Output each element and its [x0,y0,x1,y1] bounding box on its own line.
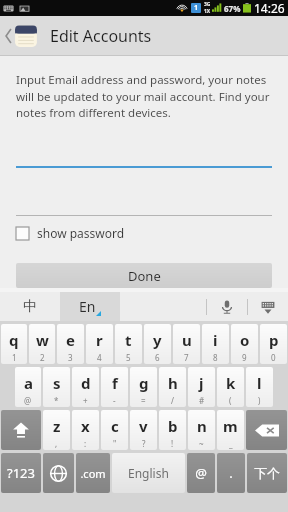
button[interactable]: x [72,410,99,450]
staticText: . [229,464,233,482]
button[interactable]: Change keyboard language [43,453,74,493]
button[interactable]: f [101,367,128,407]
staticText: ~ [199,438,204,449]
button[interactable]: Shift [1,410,41,450]
button[interactable]: . [217,453,245,493]
staticText: j [199,373,204,393]
staticText: f [112,373,118,393]
staticText: q [9,330,19,350]
staticText: : [84,438,87,449]
button[interactable] [16,194,272,216]
button[interactable]: Voice input [207,292,247,321]
staticText: 中 [23,298,37,316]
staticText: " [113,438,117,449]
staticText: 3G [204,1,211,8]
button[interactable]: Chinese input [0,292,60,321]
button[interactable]: g [130,367,157,407]
staticText: .com [80,466,106,481]
button[interactable]: Done [16,263,272,288]
staticText: Input Email address and password, your n… [16,72,272,120]
staticText: / [171,395,174,406]
button[interactable]: @ [187,453,215,493]
staticText: u [182,330,192,350]
staticText: l [257,373,262,393]
staticText: Edit Accounts [50,25,152,47]
staticText: n [197,416,207,436]
button[interactable]: h [159,367,186,407]
staticText: v [139,416,148,436]
staticText: 0 [271,352,276,363]
button[interactable]: c [101,410,128,450]
button[interactable]: .com [76,453,110,493]
button[interactable] [16,146,272,168]
button[interactable]: En [60,292,120,321]
staticText: g [139,373,149,393]
button[interactable]: v [130,410,157,450]
staticText: h [168,373,178,393]
button[interactable]: k [217,367,244,407]
button[interactable]: n [188,410,215,450]
staticText: 7 [184,352,189,363]
button[interactable]: u [173,324,200,364]
button[interactable]: show password [16,225,125,241]
staticText: m [223,416,238,436]
staticText: o [240,330,250,350]
button[interactable]: English [112,453,185,493]
staticText: i [213,330,218,350]
staticText: t [125,330,132,350]
staticText: 1 [194,3,199,13]
staticText: @ [24,395,32,406]
staticText: d [81,373,91,393]
staticText: c [111,416,119,436]
staticText: 67% [224,3,241,14]
staticText: ?123 [7,464,35,482]
staticText: y [153,330,162,350]
button[interactable]: Hide keyboard [248,292,288,321]
staticText: @ [195,464,207,482]
staticText: show password [37,225,125,241]
button[interactable]: q [1,324,27,364]
staticText: _ [229,438,233,449]
button[interactable]: r [86,324,113,364]
button[interactable]: z [43,410,70,450]
button[interactable]: d [72,367,99,407]
button[interactable]: ?123 [1,453,41,493]
button[interactable]: Backspace [246,410,287,450]
staticText: 2 [40,352,45,363]
button[interactable]: 下个 [247,453,287,493]
staticText: ? [142,438,146,449]
staticText: 5 [126,352,131,363]
staticText: ) [258,395,261,406]
staticText: 下个 [254,465,280,481]
staticText: 8 [213,352,218,363]
button[interactable]: e [57,324,84,364]
staticText: e [66,330,75,350]
staticText: 6 [155,352,160,363]
button[interactable]: o [231,324,258,364]
button[interactable]: i [202,324,229,364]
button[interactable]: m [217,410,244,450]
staticText: r [96,330,103,350]
staticText: 14:26 [254,0,285,16]
staticText: p [269,330,279,350]
staticText: English [128,465,169,481]
button[interactable]: y [144,324,171,364]
staticText: 1X [204,8,211,15]
button[interactable]: l [246,367,273,407]
button[interactable]: s [43,367,70,407]
button[interactable]: b [159,410,186,450]
staticText: w [36,330,49,350]
button[interactable]: t [115,324,142,364]
staticText: * [54,395,59,406]
button[interactable]: w [29,324,55,364]
staticText: 1 [12,352,17,363]
staticText: 3 [68,352,73,363]
button[interactable]: Navigate up [4,16,40,56]
button[interactable]: p [260,324,287,364]
staticText: x [81,416,90,436]
button[interactable]: a [15,367,41,407]
button[interactable]: j [188,367,215,407]
staticText: b [168,416,178,436]
staticText: s [53,373,61,393]
staticText: z [53,416,61,436]
